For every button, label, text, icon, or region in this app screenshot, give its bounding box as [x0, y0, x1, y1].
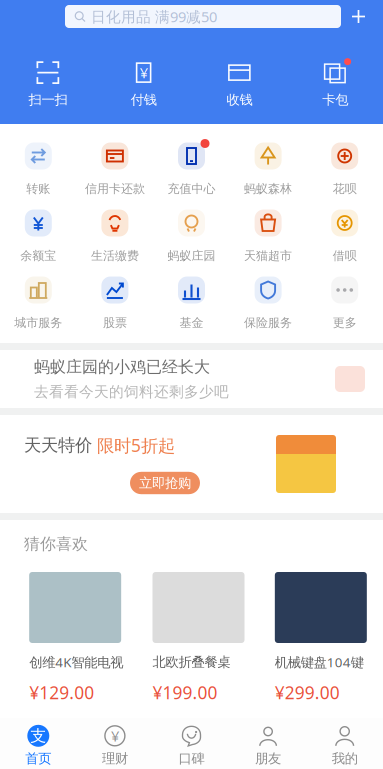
button[interactable]: 保险服务: [230, 271, 306, 338]
staticText: 更多: [333, 315, 357, 330]
staticText: 去看看今天的饲料还剩多少吧: [34, 383, 229, 401]
button[interactable]: 信用卡还款: [77, 137, 153, 204]
staticText: 生活缴费: [91, 248, 139, 263]
staticText: 口碑: [178, 750, 204, 767]
button[interactable]: 基金: [153, 271, 230, 338]
button[interactable]: 转账: [0, 137, 77, 204]
button[interactable]: 更多: [306, 271, 383, 338]
button[interactable]: 创维4K智能电视: [8, 572, 130, 704]
button[interactable]: ¥: [96, 60, 192, 108]
button[interactable]: 蚂蚁庄园的小鸡已经长大: [0, 350, 383, 408]
staticText: 天天特价: [24, 435, 92, 456]
staticText: 信用卡还款: [85, 181, 145, 196]
staticText: ¥129.00: [29, 681, 94, 704]
button[interactable]: 蚂蚁森林: [230, 137, 306, 204]
staticText: 基金: [179, 315, 203, 330]
staticText: 限时5折起: [97, 434, 175, 457]
staticText: 蚂蚁森林: [244, 181, 292, 196]
button[interactable]: 口碑: [153, 720, 230, 767]
staticText: 理财: [102, 750, 128, 767]
staticText: 首页: [25, 750, 51, 767]
staticText: 支: [30, 726, 46, 746]
button[interactable]: 朋友: [230, 720, 306, 767]
staticText: 充值中心: [167, 181, 215, 196]
staticText: 蚂蚁庄园的小鸡已经长大: [34, 357, 210, 377]
button[interactable]: 充值中心: [153, 137, 230, 204]
button[interactable]: 机械键盘104键: [253, 572, 375, 704]
staticText: 我的: [332, 750, 358, 767]
staticText: 付钱: [131, 92, 157, 108]
staticText: ¥: [111, 726, 119, 746]
button[interactable]: 我的: [306, 720, 383, 767]
staticText: 机械键盘104键: [275, 653, 364, 671]
staticText: 花呗: [333, 181, 357, 196]
button[interactable]: 股票: [77, 271, 153, 338]
staticText: 余额宝: [20, 248, 56, 263]
staticText: 借呗: [333, 248, 357, 263]
button[interactable]: 卡包: [287, 60, 383, 108]
staticText: 朋友: [255, 750, 281, 767]
button[interactable]: 花呗: [306, 137, 383, 204]
button[interactable]: 北欧折叠餐桌: [130, 572, 253, 704]
button[interactable]: 收钱: [191, 60, 287, 108]
staticText: 扫一扫: [28, 92, 67, 108]
button[interactable]: 扫一扫: [0, 60, 96, 108]
staticText: 卡包: [322, 92, 348, 108]
button[interactable]: 支: [0, 720, 77, 767]
button[interactable]: 天天特价: [0, 415, 383, 513]
staticText: 城市服务: [14, 315, 62, 330]
button[interactable]: 借呗: [306, 204, 383, 271]
staticText: ¥: [140, 63, 148, 82]
button[interactable]: 天猫超市: [230, 204, 306, 271]
staticText: 日化用品 满99减50: [91, 7, 217, 26]
staticText: ¥299.00: [275, 681, 340, 704]
button[interactable]: 日化用品 满99减50: [65, 5, 341, 28]
staticText: 立即抢购: [139, 475, 191, 491]
staticText: 蚂蚁庄园: [167, 248, 215, 263]
staticText: 猜你喜欢: [24, 534, 88, 554]
button[interactable]: ¥: [77, 720, 153, 767]
staticText: 收钱: [226, 92, 252, 108]
staticText: 天猫超市: [244, 248, 292, 263]
staticText: ¥199.00: [152, 681, 217, 704]
staticText: 北欧折叠餐桌: [152, 654, 230, 670]
staticText: 创维4K智能电视: [29, 653, 123, 671]
staticText: 转账: [26, 181, 50, 196]
button[interactable]: 余额宝: [0, 204, 77, 271]
button[interactable]: 城市服务: [0, 271, 77, 338]
button[interactable]: 蚂蚁庄园: [153, 204, 230, 271]
staticText: 股票: [103, 315, 127, 330]
button[interactable]: 添加: [350, 8, 367, 25]
button[interactable]: 生活缴费: [77, 204, 153, 271]
staticText: 保险服务: [244, 315, 292, 330]
